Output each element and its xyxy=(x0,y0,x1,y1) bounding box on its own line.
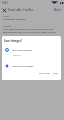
staticText: Message xyxy=(3,25,12,28)
staticText: edit because it was not constructive. Pl… xyxy=(3,31,56,34)
button[interactable]: Save as new message xyxy=(2,47,61,53)
staticText: Hello @username! Sorry, I had to revert … xyxy=(3,28,53,31)
staticText: Coolbe xyxy=(23,8,34,12)
staticText: Save as new message xyxy=(12,49,32,52)
staticText: 9:41 xyxy=(2,1,8,5)
staticText: Save changes? xyxy=(4,39,23,42)
staticText: Save xyxy=(53,72,58,75)
button[interactable]: Don't save xyxy=(38,70,51,77)
staticText: Vandalism warning xyxy=(3,17,26,20)
staticText: Update saved message xyxy=(12,65,34,68)
button[interactable]: Save xyxy=(52,70,59,77)
button[interactable]: Next xyxy=(51,6,64,14)
staticText: User talk: xyxy=(8,8,23,12)
button[interactable]: Close xyxy=(0,5,8,15)
staticText: Subject xyxy=(3,15,10,18)
staticText: Don't save xyxy=(39,72,50,75)
staticText: Subject xyxy=(13,54,21,57)
staticText: Next xyxy=(54,8,61,12)
button[interactable]: Update saved message xyxy=(2,63,61,69)
